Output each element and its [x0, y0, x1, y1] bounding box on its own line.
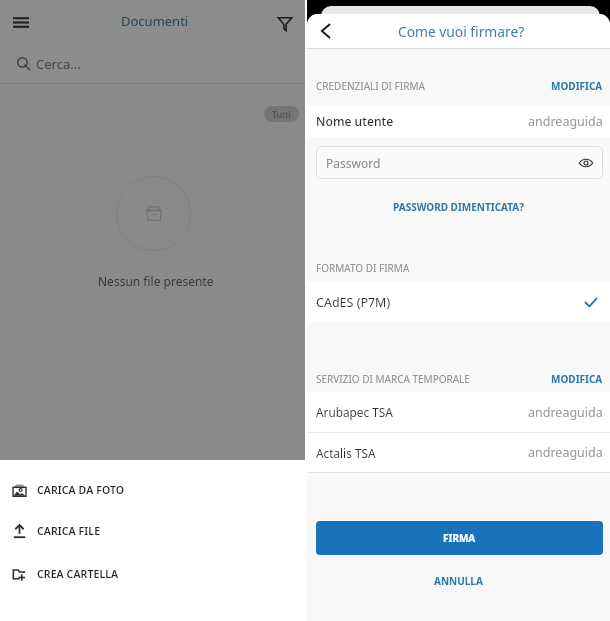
button[interactable]: Password [316, 146, 603, 179]
button[interactable]: PASSWORD DIMENTICATA? [307, 200, 610, 214]
button[interactable]: CARICA DA FOTO [0, 475, 305, 505]
button[interactable]: CAdES (P7M) [307, 282, 610, 323]
button[interactable]: MODIFICA [551, 79, 603, 93]
button[interactable]: ANNULLA [307, 574, 610, 588]
staticText: andreaguida [528, 444, 603, 461]
staticText: PASSWORD DIMENTICATA? [393, 200, 525, 214]
button[interactable]: CARICA FILE [0, 516, 305, 546]
button[interactable]: Back [311, 17, 339, 45]
staticText: Actalis TSA [316, 445, 376, 461]
button[interactable]: Cerca... [0, 44, 305, 83]
staticText: andreaguida [528, 404, 603, 421]
staticText: Nome utente [316, 113, 394, 130]
staticText: CARICA FILE [37, 524, 101, 538]
staticText: CARICA DA FOTO [37, 483, 125, 497]
button[interactable]: Actalis TSA [307, 433, 610, 472]
staticText: MODIFICA [551, 79, 603, 93]
button[interactable]: CREA CARTELLA [0, 559, 305, 589]
staticText: Nessun file presente [98, 273, 214, 289]
button[interactable]: MODIFICA [551, 372, 603, 386]
staticText: SERVIZIO DI MARCA TEMPORALE [316, 372, 470, 386]
button[interactable]: Arubapec TSA [307, 392, 610, 432]
staticText: CAdES (P7M) [316, 294, 391, 311]
staticText: Arubapec TSA [316, 404, 393, 420]
staticText: CREA CARTELLA [37, 567, 119, 581]
staticText: MODIFICA [551, 372, 603, 386]
staticText: andreaguida [528, 113, 603, 130]
staticText: Tutti [272, 108, 291, 120]
button[interactable]: Tutti [264, 106, 299, 122]
staticText: FIRMA [443, 531, 476, 545]
staticText: FORMATO DI FIRMA [316, 261, 410, 275]
button[interactable]: Menu [4, 5, 38, 39]
staticText: Documenti [121, 12, 189, 30]
button[interactable]: Show password [568, 147, 594, 178]
button[interactable]: Filter [266, 5, 300, 39]
staticText: CREDENZIALI DI FIRMA [316, 79, 425, 93]
button[interactable]: Nome utente [307, 106, 610, 137]
staticText: Come vuoi firmare? [398, 22, 525, 41]
staticText: Cerca... [36, 55, 81, 73]
staticText: ANNULLA [434, 574, 483, 588]
button[interactable]: FIRMA [316, 521, 603, 555]
staticText: Password [326, 155, 381, 171]
